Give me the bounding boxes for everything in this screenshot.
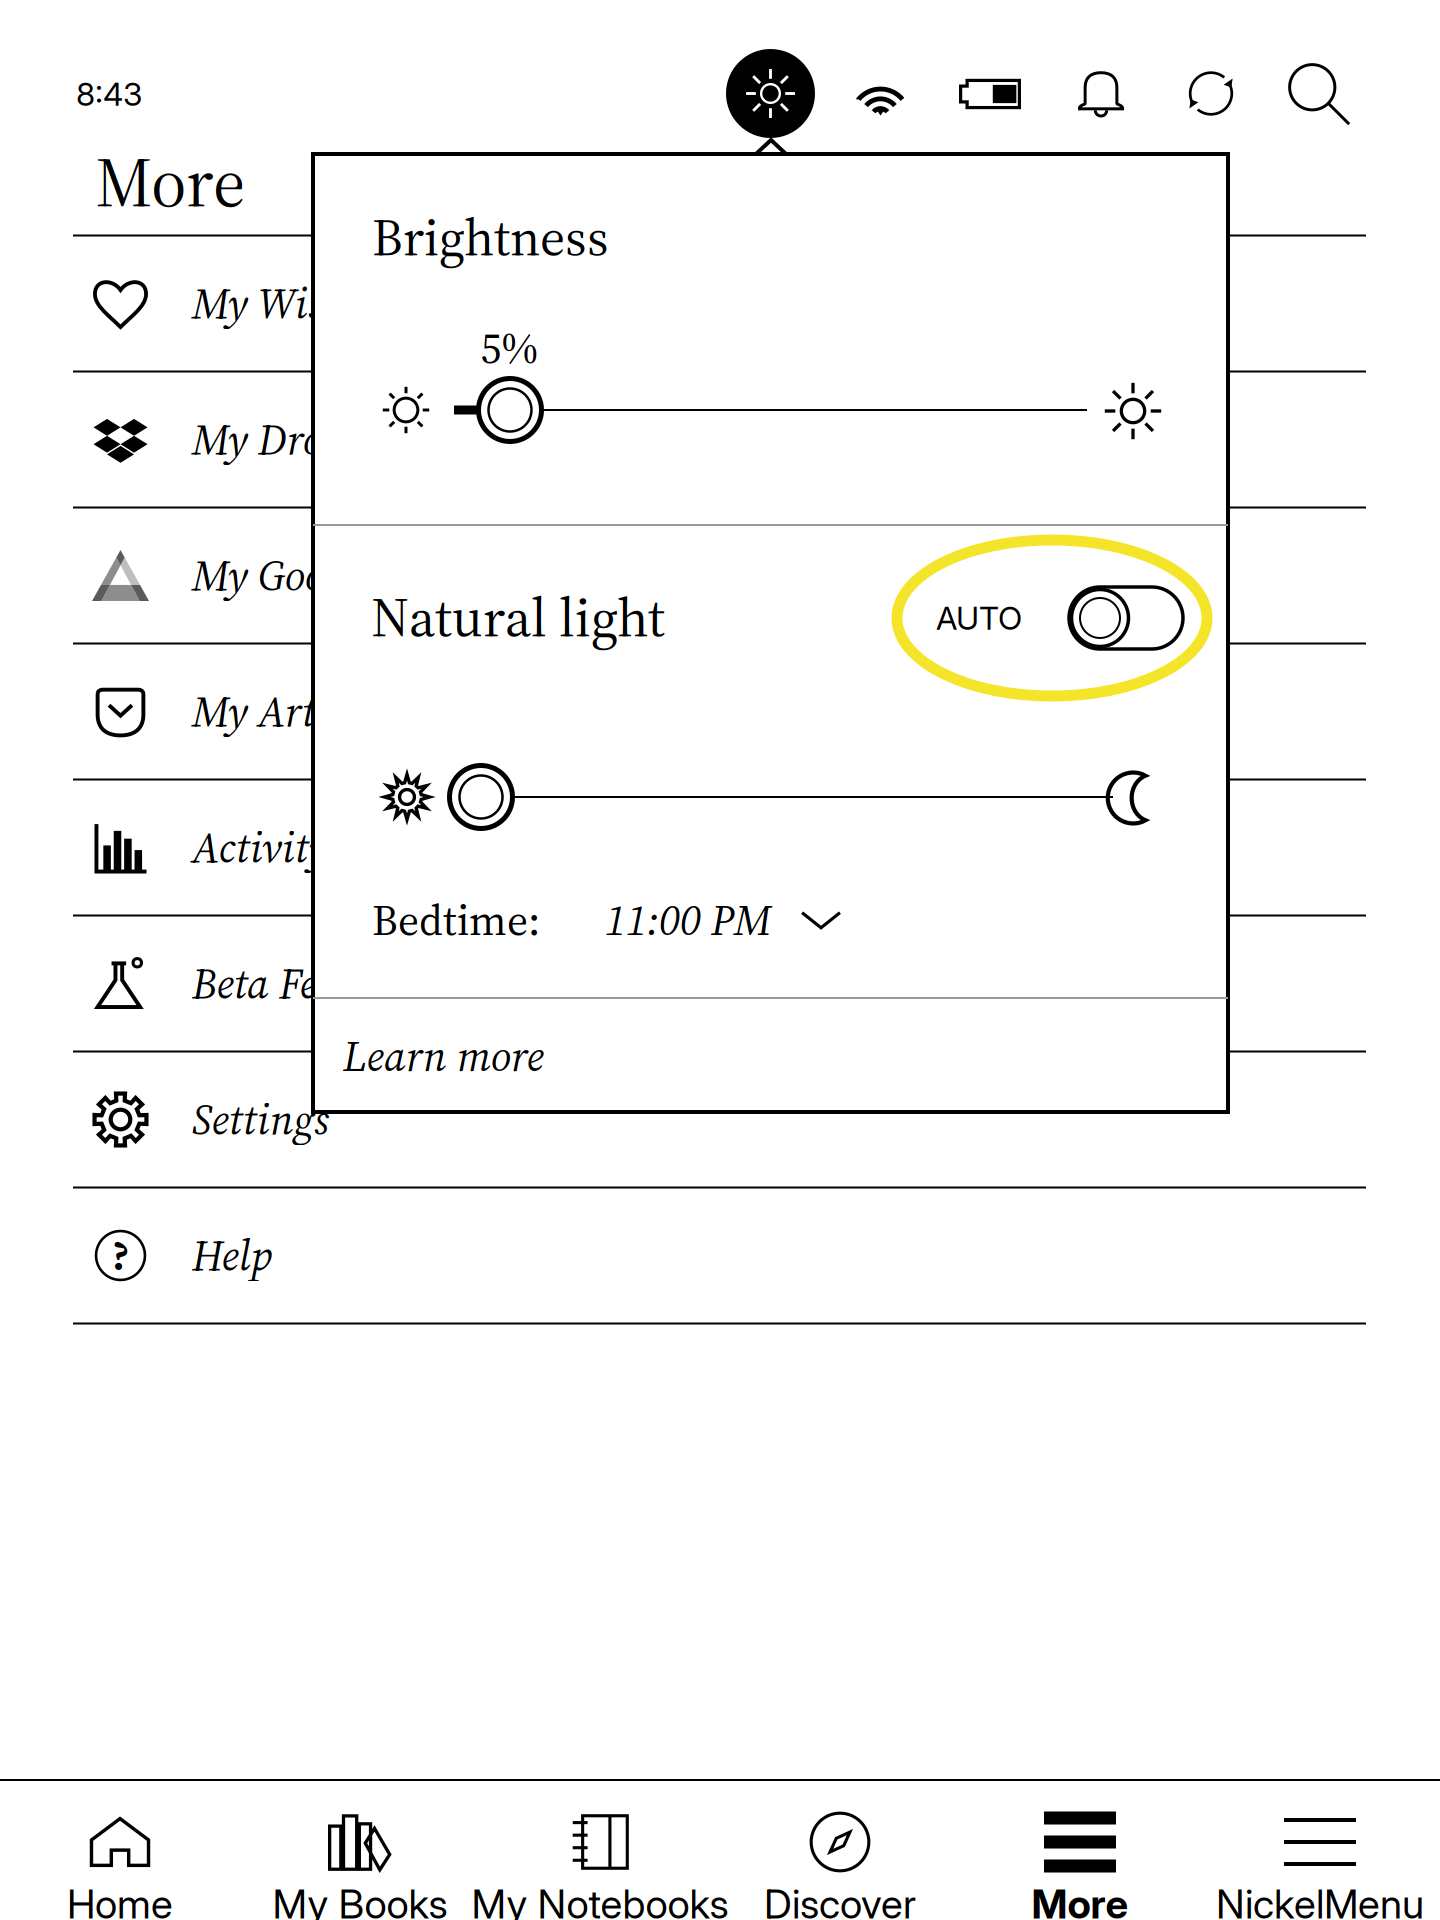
staticText: Beta Features — [192, 954, 425, 1013]
staticText: 8:43 — [76, 75, 142, 113]
button[interactable]: My Articles — [73, 644, 1366, 778]
button[interactable]: Home — [0, 1792, 240, 1920]
staticText: Home — [67, 1880, 173, 1920]
staticText: More — [1031, 1880, 1128, 1920]
button[interactable]: Search — [1270, 35, 1370, 155]
button[interactable]: Beta Features — [73, 916, 1366, 1050]
button[interactable]: Discover — [720, 1792, 960, 1920]
button[interactable]: ? — [73, 1188, 1366, 1322]
button[interactable]: Notifications — [1051, 34, 1151, 154]
staticText: My Books — [272, 1880, 447, 1920]
staticText: AUTO — [936, 599, 1022, 637]
staticText: Help — [192, 1226, 272, 1285]
button[interactable]: Learn more — [343, 1021, 623, 1091]
staticText: My Notebooks — [471, 1880, 728, 1920]
button[interactable]: Wi-Fi — [830, 37, 930, 157]
staticText: My Dropbox — [192, 410, 407, 469]
button[interactable]: Brightness — [718, 33, 822, 153]
button[interactable]: My Books — [240, 1792, 480, 1920]
button[interactable]: My Wishlist — [73, 236, 1366, 370]
staticText: My Wishlist — [192, 274, 399, 333]
staticText: Activity — [192, 818, 329, 877]
button[interactable]: 11:00 PM — [605, 880, 895, 960]
staticText: Bedtime: — [372, 891, 540, 949]
staticText: Discover — [764, 1880, 916, 1920]
staticText: More — [95, 134, 245, 230]
button[interactable]: My Google Drive — [73, 508, 1366, 642]
button[interactable]: AUTO — [886, 570, 1186, 666]
button[interactable]: Settings — [73, 1052, 1366, 1186]
button[interactable]: My Dropbox — [73, 372, 1366, 506]
staticText: Learn more — [343, 1027, 544, 1085]
button[interactable]: NickelMenu — [1200, 1792, 1440, 1920]
staticText: Brightness — [372, 201, 609, 273]
staticText: My Articles — [192, 682, 389, 741]
button[interactable]: More — [960, 1792, 1200, 1920]
button[interactable]: My Notebooks — [480, 1792, 720, 1920]
button[interactable]: Battery — [940, 34, 1040, 154]
button[interactable]: Sync — [1161, 33, 1261, 153]
staticText: My Google Drive — [192, 546, 479, 605]
staticText: Natural light — [371, 579, 665, 654]
staticText: 11:00 PM — [605, 891, 772, 949]
staticText: ? — [112, 1228, 129, 1283]
button[interactable]: Activity — [73, 780, 1366, 914]
staticText: Settings — [192, 1090, 329, 1149]
staticText: NickelMenu — [1216, 1880, 1424, 1920]
staticText: 5% — [480, 319, 537, 377]
